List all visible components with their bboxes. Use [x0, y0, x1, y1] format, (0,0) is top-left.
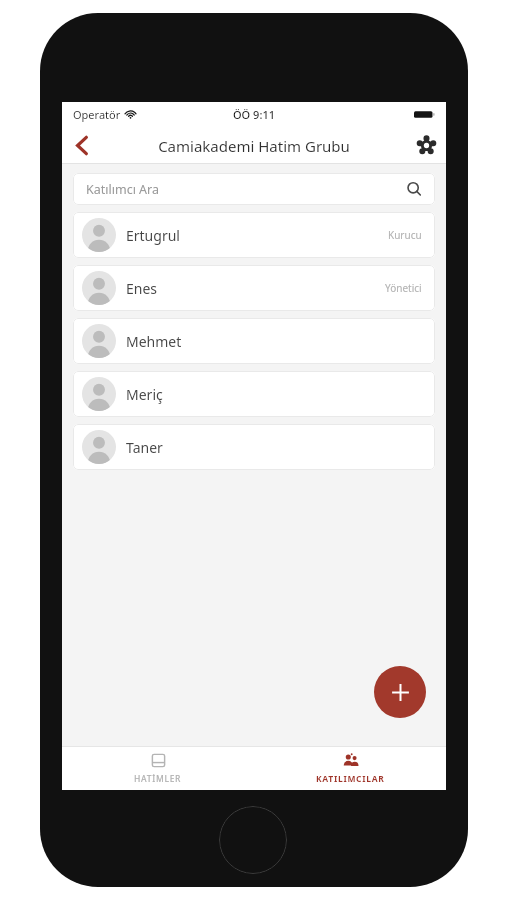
button[interactable]: Back — [62, 127, 102, 164]
staticText: KATILIMCILAR — [316, 773, 385, 785]
button[interactable]: Ertugrul — [73, 212, 435, 258]
staticText: ÖÖ 9:11 — [233, 107, 275, 122]
button[interactable]: Add participant — [374, 666, 426, 718]
staticText: Ertugrul — [126, 226, 388, 245]
staticText: Operatör — [73, 107, 121, 122]
staticText: Yönetici — [385, 281, 422, 295]
button[interactable]: Settings — [406, 127, 446, 164]
button[interactable]: KATILIMCILAR — [254, 746, 446, 790]
staticText: Meriç — [126, 385, 422, 404]
button[interactable]: Meriç — [73, 371, 435, 417]
staticText: HATİMLER — [134, 773, 182, 785]
button[interactable]: Mehmet — [73, 318, 435, 364]
button[interactable]: Taner — [73, 424, 435, 470]
button[interactable]: Enes — [73, 265, 435, 311]
staticText: Enes — [126, 279, 385, 298]
staticText: Mehmet — [126, 332, 422, 351]
staticText: Katılımcı Ara — [86, 181, 406, 198]
staticText: Camiakademi Hatim Grubu — [158, 136, 350, 156]
button[interactable]: Katılımcı Ara — [73, 173, 435, 205]
staticText: Taner — [126, 438, 422, 457]
staticText: Kurucu — [388, 228, 422, 242]
button[interactable]: HATİMLER — [62, 746, 254, 790]
